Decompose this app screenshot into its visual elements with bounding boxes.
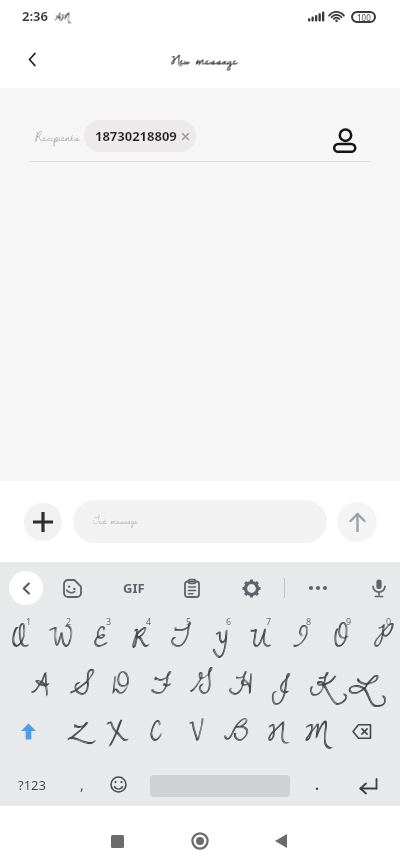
staticText: F bbox=[151, 665, 170, 707]
staticText: Y bbox=[212, 618, 228, 660]
button[interactable]: ?123 bbox=[8, 763, 55, 806]
button[interactable] bbox=[18, 45, 46, 73]
button[interactable] bbox=[337, 502, 377, 542]
button[interactable]: GIF bbox=[118, 573, 150, 603]
button[interactable]: E bbox=[80, 614, 120, 661]
button[interactable]: C bbox=[136, 708, 176, 755]
staticText: Z bbox=[68, 711, 87, 753]
staticText: G bbox=[190, 665, 210, 707]
staticText: O bbox=[334, 617, 347, 659]
staticText: I bbox=[294, 617, 308, 659]
button[interactable]: B bbox=[216, 708, 256, 755]
staticText: X bbox=[106, 712, 127, 754]
button[interactable] bbox=[364, 573, 394, 603]
button[interactable]: Y bbox=[200, 614, 240, 661]
button[interactable]: V bbox=[176, 708, 216, 755]
button[interactable]: J bbox=[260, 661, 300, 708]
button[interactable] bbox=[187, 828, 213, 854]
staticText: R bbox=[132, 617, 149, 659]
button[interactable]: U bbox=[240, 614, 280, 661]
staticText: C bbox=[150, 712, 162, 754]
button[interactable] bbox=[24, 503, 62, 541]
staticText: M bbox=[305, 712, 327, 754]
staticText: 9 bbox=[346, 615, 352, 627]
staticText: K bbox=[310, 664, 331, 706]
button[interactable]: K bbox=[300, 661, 340, 708]
button[interactable]: D bbox=[100, 661, 140, 708]
staticText: F bbox=[152, 664, 171, 706]
button[interactable]: W bbox=[40, 614, 80, 661]
staticText: A bbox=[31, 665, 49, 707]
staticText: N bbox=[269, 711, 286, 753]
button[interactable] bbox=[177, 573, 207, 603]
staticText: I bbox=[293, 618, 307, 660]
staticText: K bbox=[310, 665, 331, 707]
button[interactable]: Text message bbox=[73, 500, 327, 543]
staticText: I bbox=[293, 617, 307, 659]
button[interactable]: R bbox=[120, 614, 160, 661]
staticText: H bbox=[230, 664, 253, 706]
button[interactable]: P bbox=[360, 614, 400, 661]
staticText: , bbox=[80, 775, 84, 794]
staticText: R bbox=[132, 618, 149, 660]
staticText: V bbox=[190, 711, 204, 753]
button[interactable]: H bbox=[220, 661, 260, 708]
button[interactable] bbox=[57, 573, 87, 603]
button[interactable]: S bbox=[60, 661, 100, 708]
staticText: K bbox=[311, 664, 332, 706]
staticText: P bbox=[374, 618, 387, 660]
button[interactable] bbox=[332, 128, 358, 154]
staticText: T bbox=[172, 617, 190, 659]
button[interactable]: 18730218809 bbox=[84, 120, 196, 152]
button[interactable]: X bbox=[96, 708, 136, 755]
staticText: V bbox=[189, 711, 203, 753]
staticText: AM bbox=[55, 9, 70, 25]
button[interactable]: L bbox=[340, 661, 380, 708]
button[interactable]: F bbox=[140, 661, 180, 708]
staticText: U bbox=[251, 617, 271, 659]
staticText: U bbox=[250, 617, 270, 659]
button[interactable]: I bbox=[280, 614, 320, 661]
staticText: B bbox=[225, 711, 249, 753]
staticText: 18730218809 bbox=[95, 127, 177, 145]
staticText: L bbox=[348, 665, 373, 707]
button[interactable] bbox=[104, 828, 130, 854]
button[interactable]: O bbox=[320, 614, 360, 661]
staticText: Q bbox=[13, 617, 29, 659]
button[interactable] bbox=[336, 708, 400, 755]
button[interactable] bbox=[236, 573, 266, 603]
staticText: N bbox=[268, 711, 285, 753]
staticText: C bbox=[151, 711, 163, 753]
staticText: GIF bbox=[123, 579, 145, 597]
button[interactable]: G bbox=[180, 661, 220, 708]
button[interactable] bbox=[303, 573, 333, 603]
button[interactable]: , bbox=[60, 763, 104, 806]
staticText: 2:36 bbox=[22, 7, 48, 25]
staticText: U bbox=[250, 618, 270, 660]
button[interactable] bbox=[9, 571, 43, 605]
button[interactable]: M bbox=[296, 708, 336, 755]
staticText: L bbox=[349, 664, 374, 706]
button[interactable] bbox=[0, 708, 56, 755]
button[interactable]: A bbox=[20, 661, 60, 708]
button[interactable] bbox=[96, 763, 140, 806]
staticText: J bbox=[273, 665, 287, 707]
button[interactable]: T bbox=[160, 614, 200, 661]
button[interactable]: . bbox=[295, 763, 339, 806]
button[interactable] bbox=[268, 828, 294, 854]
button[interactable]: Z bbox=[56, 708, 96, 755]
staticText: V bbox=[189, 712, 203, 754]
staticText: 5 bbox=[186, 615, 192, 627]
staticText: E bbox=[95, 617, 107, 659]
button[interactable]: Q bbox=[0, 614, 40, 661]
staticText: 8 bbox=[306, 615, 312, 627]
staticText: 2 bbox=[66, 615, 72, 627]
button[interactable]: N bbox=[256, 708, 296, 755]
staticText: O bbox=[335, 617, 348, 659]
staticText: Q bbox=[12, 618, 28, 660]
staticText: E bbox=[94, 617, 106, 659]
staticText: New message bbox=[172, 48, 239, 71]
button[interactable] bbox=[346, 763, 390, 806]
staticText: D bbox=[112, 664, 128, 706]
